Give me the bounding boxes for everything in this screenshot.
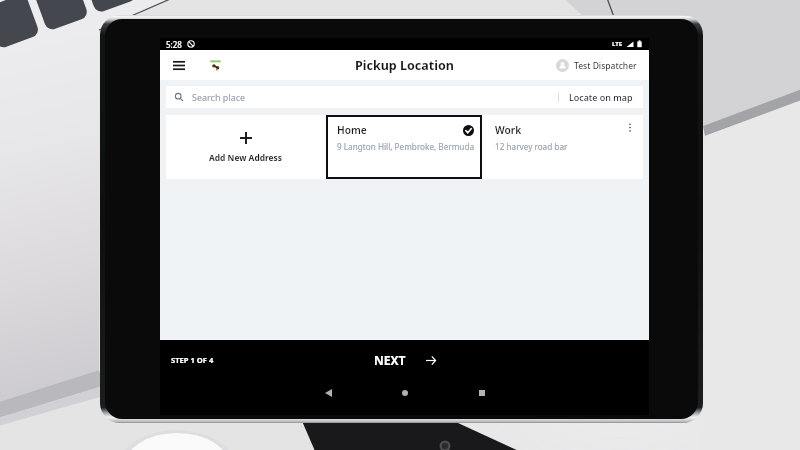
button[interactable]: Menu [170, 56, 188, 74]
button[interactable]: Add New Address [166, 115, 326, 179]
button[interactable]: Recents [469, 384, 495, 402]
staticText: Add New Address [209, 152, 283, 163]
staticText: Work [495, 123, 522, 137]
button[interactable]: NEXT [374, 352, 436, 368]
staticText: Search place [192, 91, 246, 103]
staticText: 12 harvey road bar [495, 141, 568, 152]
button[interactable]: Home [392, 384, 418, 402]
button[interactable]: Home [326, 115, 482, 179]
staticText: 5:28 [166, 39, 182, 50]
button[interactable]: Back [315, 384, 341, 402]
staticText: LTE [612, 40, 623, 48]
staticText: Home [337, 123, 367, 137]
button[interactable]: Locate on map [569, 91, 633, 103]
button[interactable]: More options [626, 123, 634, 134]
staticText: 9 Langton Hill, Pembroke, Bermuda [337, 141, 474, 152]
staticText: NEXT [374, 352, 406, 368]
staticText: Pickup Location [355, 57, 454, 74]
staticText: Test Dispatcher [574, 60, 637, 72]
button[interactable]: Work [482, 115, 643, 179]
button[interactable]: Test Dispatcher [556, 59, 637, 72]
staticText: STEP 1 OF 4 [171, 355, 214, 365]
